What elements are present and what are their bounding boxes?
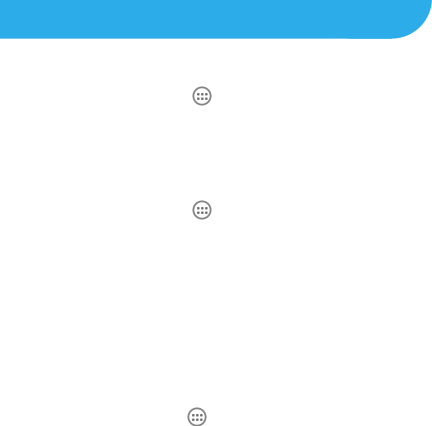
button[interactable]: Apps bbox=[193, 201, 211, 219]
button[interactable]: Apps bbox=[193, 87, 211, 105]
button[interactable]: Apps bbox=[188, 408, 206, 426]
